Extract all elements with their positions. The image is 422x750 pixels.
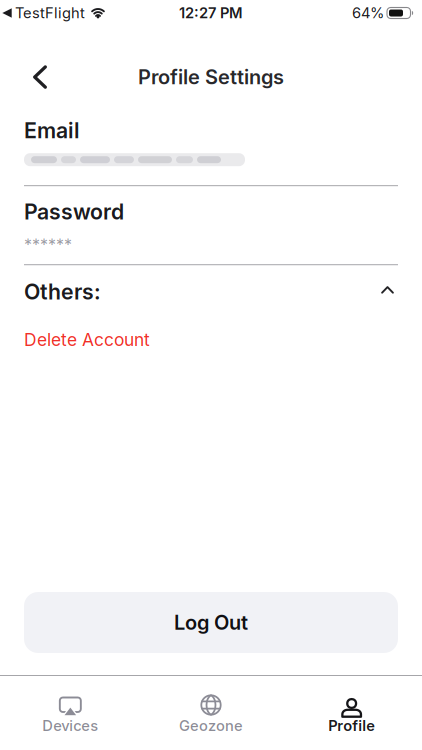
staticText: 64% — [352, 4, 384, 22]
staticText: 12:27 PM — [179, 4, 243, 22]
button[interactable]: Geozone — [141, 692, 281, 734]
staticText: TestFlight — [15, 4, 85, 22]
staticText: Others: — [24, 279, 101, 304]
staticText: Password — [24, 199, 124, 224]
staticText: Profile Settings — [138, 65, 284, 89]
staticText: Geozone — [179, 717, 243, 734]
button[interactable]: Profile — [281, 692, 422, 734]
button[interactable]: Log Out — [0, 592, 422, 653]
button[interactable]: Collapse — [381, 288, 398, 296]
button[interactable]: Devices — [0, 692, 141, 734]
button[interactable]: Back — [0, 65, 47, 89]
staticText: Email — [24, 118, 80, 143]
staticText: Devices — [42, 717, 98, 734]
staticText: Log Out — [174, 611, 248, 634]
staticText: Delete Account — [24, 329, 150, 350]
button[interactable]: Delete Account — [24, 329, 150, 350]
staticText: ****** — [24, 235, 72, 254]
staticText: Profile — [328, 717, 375, 734]
